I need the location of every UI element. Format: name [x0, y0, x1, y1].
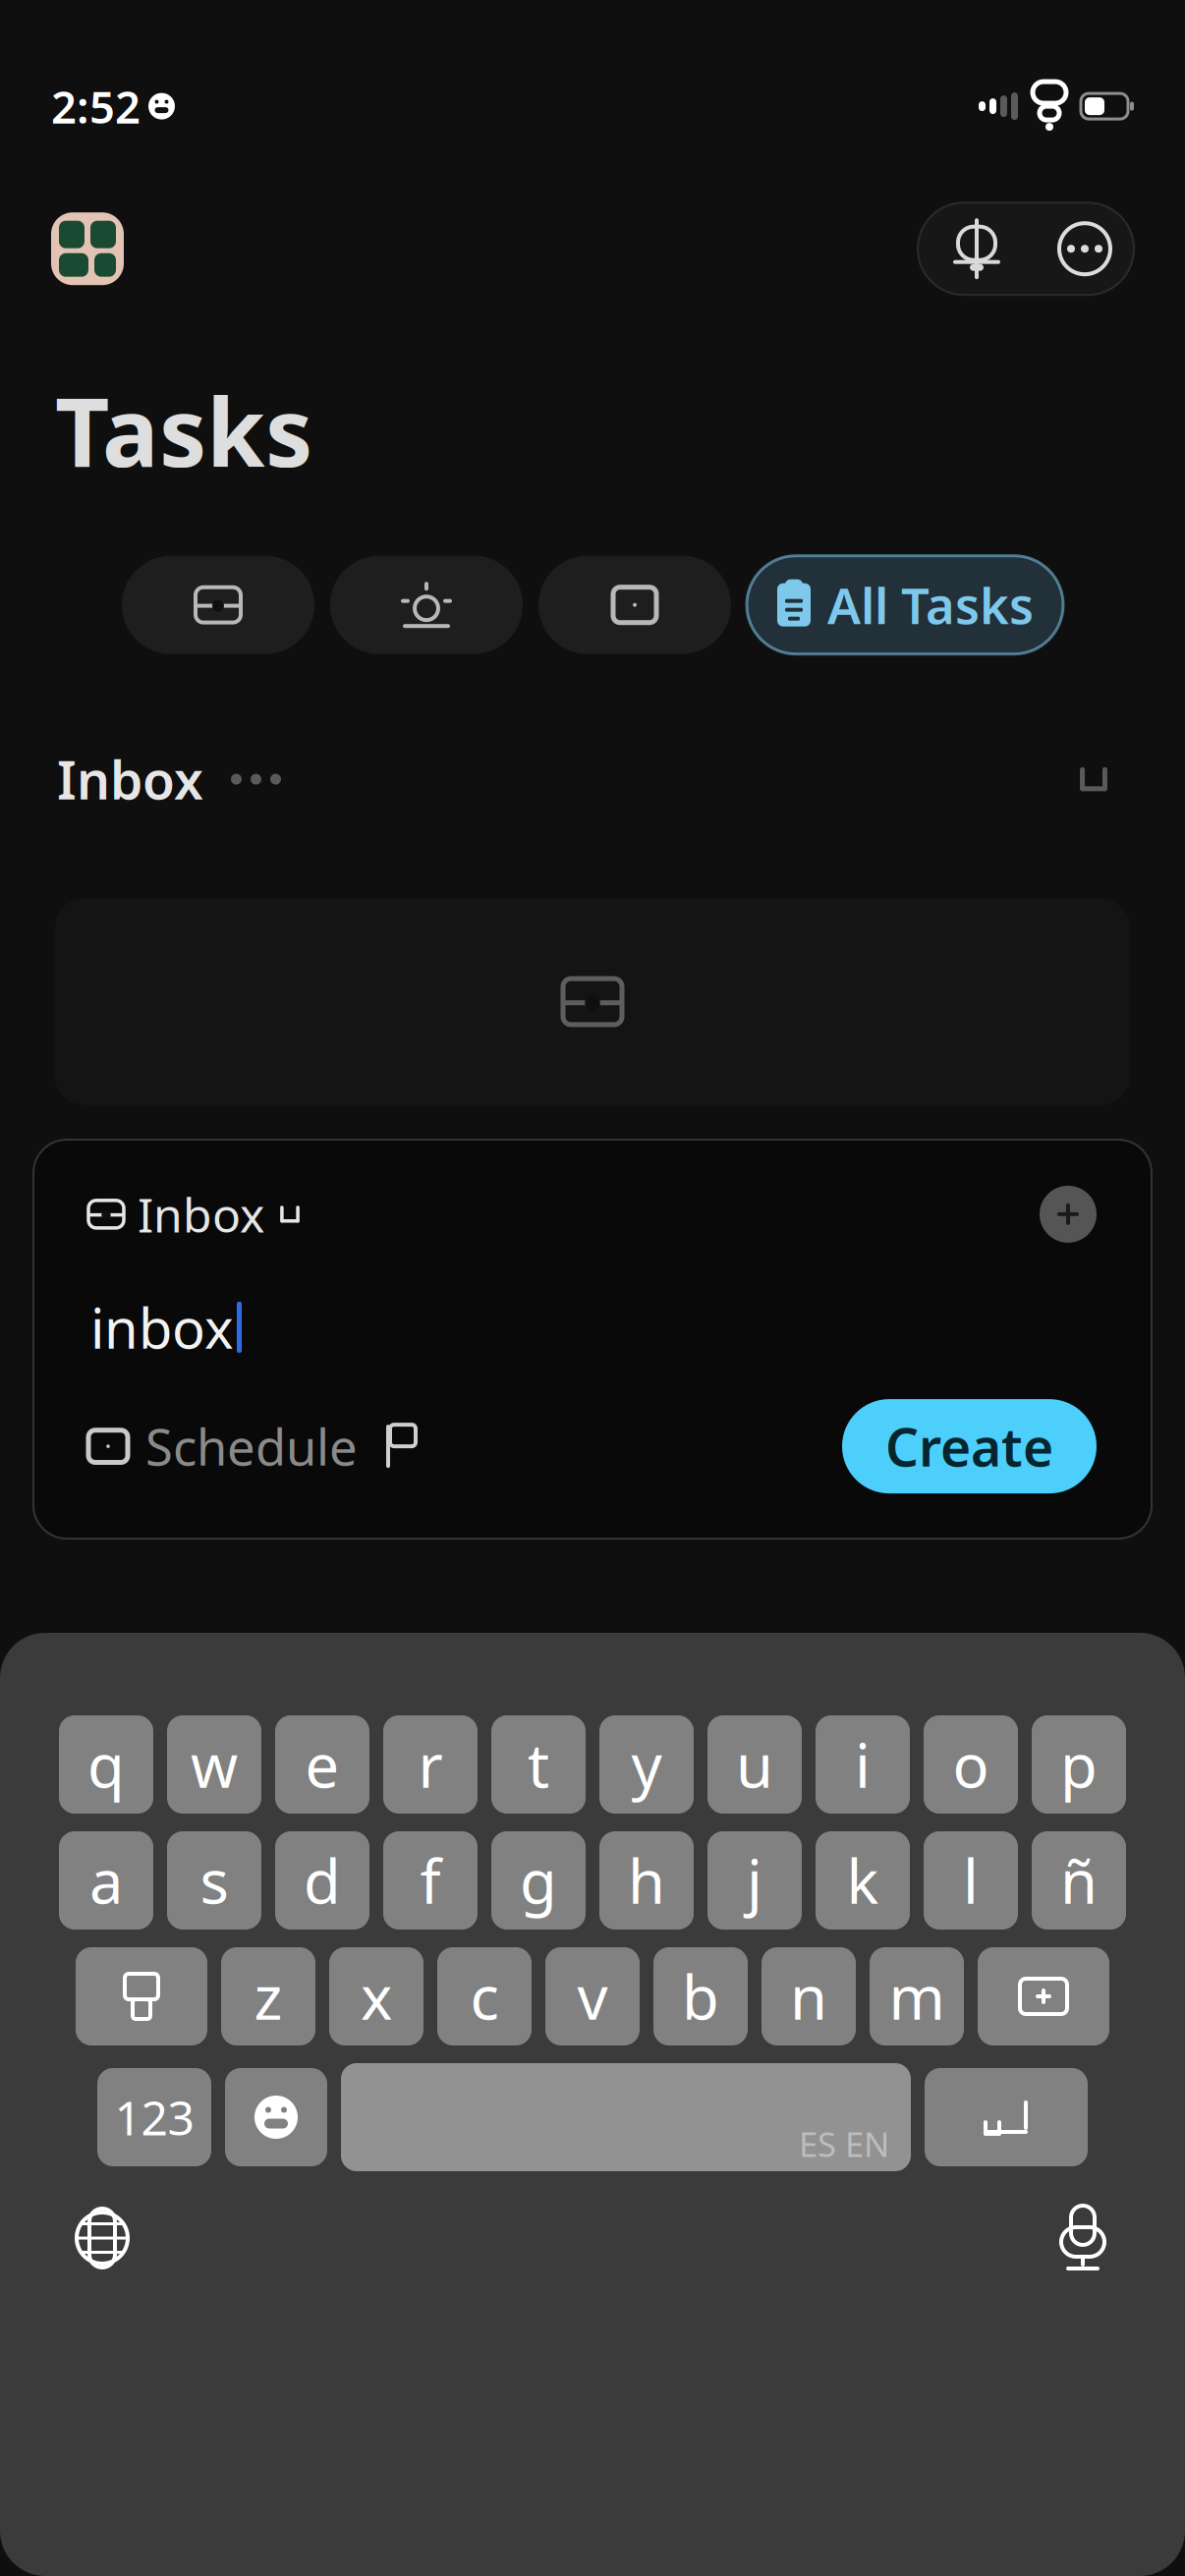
staticText: inbox: [90, 1291, 234, 1364]
staticText: p: [1060, 1725, 1098, 1804]
button[interactable]: Schedule: [88, 1413, 358, 1479]
staticText: j: [747, 1840, 762, 1920]
button[interactable]: s: [167, 1831, 261, 1930]
staticText: l: [963, 1840, 979, 1920]
staticText: Create: [885, 1411, 1053, 1481]
button[interactable]: Dictate: [1024, 2179, 1142, 2297]
button[interactable]: f: [383, 1831, 478, 1930]
button[interactable]: n: [762, 1947, 856, 2045]
button[interactable]: y: [599, 1715, 694, 1814]
button[interactable]: e: [275, 1715, 369, 1814]
staticText: r: [418, 1725, 443, 1804]
staticText: All Tasks: [827, 572, 1034, 638]
button[interactable]: ñ: [1032, 1831, 1126, 1930]
staticText: s: [200, 1840, 228, 1920]
staticText: w: [191, 1725, 238, 1804]
staticText: Inbox: [138, 1183, 264, 1245]
staticText: c: [470, 1956, 499, 2036]
staticText: q: [87, 1725, 125, 1804]
button[interactable]: j: [707, 1831, 802, 1930]
button[interactable]: Delete: [978, 1947, 1109, 2045]
button[interactable]: v: [545, 1947, 640, 2045]
staticText: a: [89, 1840, 123, 1920]
button[interactable]: Emoji: [225, 2068, 327, 2166]
button[interactable]: Close: [1040, 1186, 1097, 1243]
staticText: m: [889, 1956, 945, 2036]
button[interactable]: Next keyboard: [43, 2179, 161, 2297]
button[interactable]: c: [437, 1947, 532, 2045]
button[interactable]: Inbox: [57, 744, 281, 814]
button[interactable]: Notifications muted: [918, 203, 1036, 295]
button[interactable]: u: [707, 1715, 802, 1814]
staticText: d: [304, 1840, 341, 1920]
staticText: v: [577, 1956, 608, 2036]
staticText: y: [631, 1725, 662, 1804]
button[interactable]: w: [167, 1715, 261, 1814]
button[interactable]: Inbox filter: [122, 556, 314, 654]
button[interactable]: r: [383, 1715, 478, 1814]
staticText: Inbox: [57, 744, 203, 814]
button[interactable]: k: [816, 1831, 910, 1930]
button[interactable]: Calendar filter: [538, 556, 731, 654]
staticText: h: [628, 1840, 665, 1920]
button[interactable]: x: [329, 1947, 423, 2045]
staticText: Tasks: [55, 368, 312, 493]
staticText: b: [682, 1956, 719, 2036]
button[interactable]: b: [653, 1947, 748, 2045]
button[interactable]: i: [816, 1715, 910, 1814]
button[interactable]: q: [59, 1715, 153, 1814]
button[interactable]: t: [491, 1715, 586, 1814]
staticText: ñ: [1060, 1840, 1098, 1920]
button[interactable]: Collapse section: [1059, 750, 1128, 809]
staticText: 123: [114, 2086, 194, 2148]
staticText: ES EN: [799, 2121, 889, 2166]
button[interactable]: Shift: [76, 1947, 207, 2045]
button[interactable]: p: [1032, 1715, 1126, 1814]
staticText: 2:52: [51, 77, 141, 136]
button[interactable]: Workspace: [51, 212, 124, 285]
staticText: Schedule: [145, 1413, 358, 1479]
staticText: g: [520, 1840, 557, 1920]
staticText: n: [790, 1956, 827, 2036]
staticText: f: [420, 1840, 441, 1920]
button[interactable]: 123: [97, 2068, 211, 2166]
button[interactable]: o: [924, 1715, 1018, 1814]
button[interactable]: Return: [925, 2068, 1088, 2166]
staticText: t: [528, 1725, 549, 1804]
button[interactable]: All Tasks: [747, 556, 1063, 654]
button[interactable]: d: [275, 1831, 369, 1930]
button[interactable]: z: [221, 1947, 315, 2045]
staticText: x: [361, 1956, 392, 2036]
staticText: k: [846, 1840, 879, 1920]
button[interactable]: g: [491, 1831, 586, 1930]
button[interactable]: Today filter: [330, 556, 523, 654]
staticText: o: [953, 1725, 989, 1804]
button[interactable]: m: [870, 1947, 964, 2045]
button[interactable]: More options: [1036, 203, 1134, 295]
staticText: i: [855, 1725, 871, 1804]
button[interactable]: Flag: [358, 1412, 444, 1481]
button[interactable]: Inbox: [88, 1183, 302, 1245]
button[interactable]: h: [599, 1831, 694, 1930]
staticText: u: [736, 1725, 773, 1804]
button[interactable]: l: [924, 1831, 1018, 1930]
button[interactable]: Create: [842, 1399, 1097, 1493]
staticText: e: [305, 1725, 339, 1804]
button[interactable]: a: [59, 1831, 153, 1930]
button[interactable]: Space: [341, 2063, 911, 2171]
staticText: z: [254, 1956, 282, 2036]
